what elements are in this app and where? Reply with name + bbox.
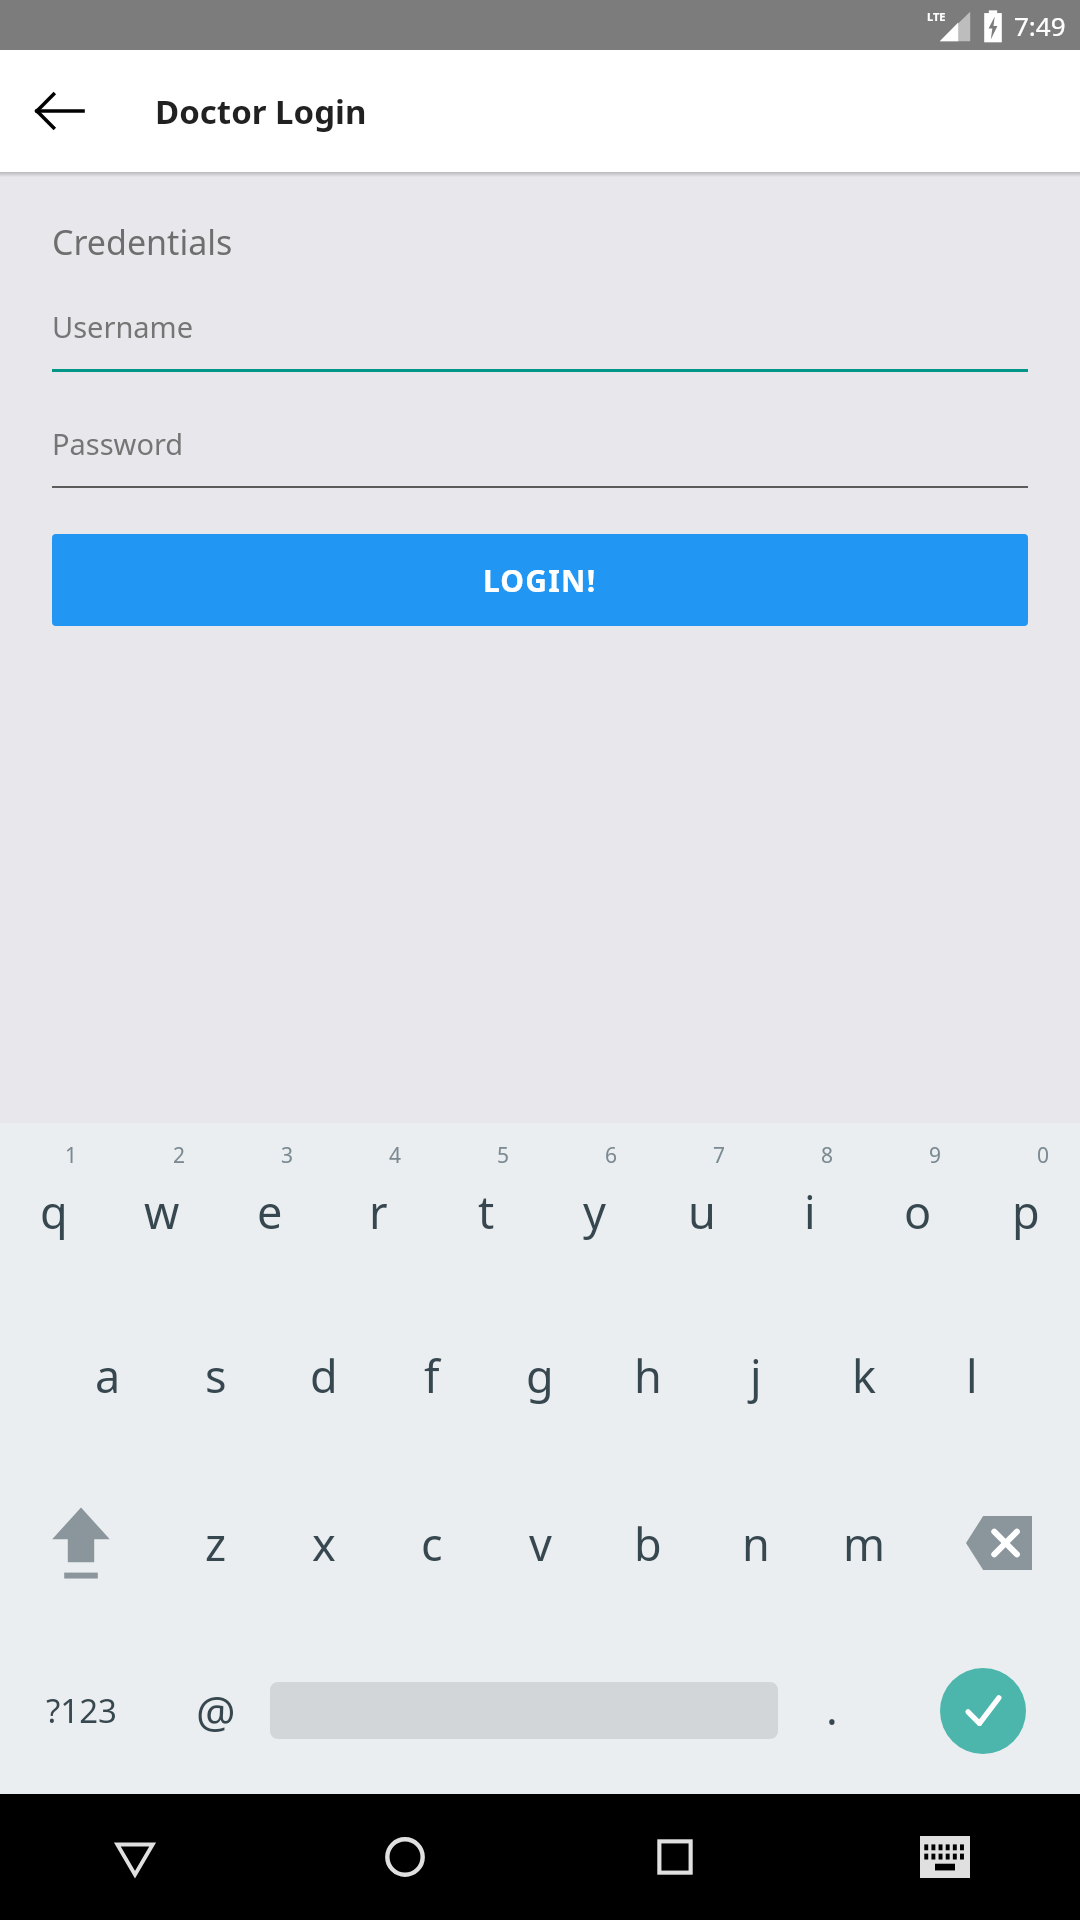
staticText: e	[257, 1181, 283, 1242]
button[interactable]: s	[162, 1291, 270, 1459]
button[interactable]: z	[162, 1459, 270, 1627]
staticText: p	[1012, 1181, 1040, 1242]
staticText: 4	[389, 1141, 402, 1170]
staticText: 2	[173, 1141, 186, 1170]
button[interactable]: a	[54, 1291, 162, 1459]
button[interactable]: f	[378, 1291, 486, 1459]
button[interactable]: 8	[756, 1123, 864, 1291]
button[interactable]: n	[702, 1459, 810, 1627]
button[interactable]: 9	[864, 1123, 972, 1291]
staticText: LOGIN!	[483, 560, 597, 601]
button[interactable]: 4	[324, 1123, 432, 1291]
button[interactable]: Back	[28, 79, 92, 143]
button[interactable]: 5	[432, 1123, 540, 1291]
button[interactable]: j	[702, 1291, 810, 1459]
button[interactable]: Shift	[0, 1459, 162, 1627]
button[interactable]: LOGIN!	[52, 534, 1028, 626]
staticText: z	[205, 1513, 227, 1574]
button[interactable]: @	[162, 1627, 270, 1794]
staticText: i	[804, 1181, 816, 1242]
staticText: k	[852, 1345, 877, 1406]
staticText: 5	[497, 1141, 510, 1170]
staticText: b	[634, 1513, 662, 1574]
button[interactable]: 2	[108, 1123, 216, 1291]
staticText: w	[144, 1181, 180, 1242]
staticText: 3	[281, 1141, 294, 1170]
button[interactable]: l	[918, 1291, 1026, 1459]
button[interactable]: Space	[270, 1627, 778, 1794]
button[interactable]: 0	[972, 1123, 1080, 1291]
staticText: v	[529, 1513, 552, 1574]
staticText: 9	[929, 1141, 942, 1170]
button[interactable]: Password	[52, 424, 1028, 488]
button[interactable]: 7	[648, 1123, 756, 1291]
staticText: ?123	[46, 1688, 117, 1733]
staticText: o	[904, 1181, 932, 1242]
staticText: s	[205, 1345, 227, 1406]
button[interactable]: d	[270, 1291, 378, 1459]
staticText: LTE	[927, 9, 946, 24]
button[interactable]: Recent apps	[540, 1794, 810, 1920]
staticText: 1	[65, 1141, 78, 1170]
staticText: x	[312, 1513, 336, 1574]
button[interactable]: 3	[216, 1123, 324, 1291]
staticText: q	[40, 1181, 68, 1242]
staticText: l	[966, 1345, 978, 1406]
staticText: 0	[1037, 1141, 1050, 1170]
staticText: g	[526, 1345, 554, 1406]
staticText: Doctor Login	[155, 89, 367, 134]
button[interactable]: Back	[0, 1794, 270, 1920]
staticText: @	[196, 1681, 236, 1741]
staticText: c	[421, 1513, 443, 1574]
staticText: f	[424, 1345, 440, 1406]
staticText: y	[583, 1181, 606, 1242]
staticText: h	[634, 1345, 662, 1406]
button[interactable]: g	[486, 1291, 594, 1459]
staticText: Password	[52, 424, 184, 463]
staticText: 6	[605, 1141, 618, 1170]
button[interactable]: c	[378, 1459, 486, 1627]
button[interactable]: h	[594, 1291, 702, 1459]
staticText: u	[688, 1181, 716, 1242]
button[interactable]: Backspace	[918, 1459, 1080, 1627]
button[interactable]: x	[270, 1459, 378, 1627]
staticText: d	[310, 1345, 338, 1406]
button[interactable]: 6	[540, 1123, 648, 1291]
button[interactable]: Hide keyboard	[810, 1794, 1080, 1920]
staticText: Username	[52, 307, 194, 346]
staticText: Credentials	[52, 219, 233, 265]
button[interactable]: k	[810, 1291, 918, 1459]
staticText: 8	[821, 1141, 834, 1170]
button[interactable]: b	[594, 1459, 702, 1627]
staticText: j	[750, 1345, 762, 1406]
button[interactable]: ?123	[0, 1627, 162, 1794]
button[interactable]: Username	[52, 307, 1028, 372]
staticText: .	[826, 1678, 838, 1738]
button[interactable]: v	[486, 1459, 594, 1627]
staticText: t	[478, 1181, 495, 1242]
staticText: 7:49	[1014, 8, 1066, 43]
button[interactable]: m	[810, 1459, 918, 1627]
button[interactable]: .	[778, 1627, 886, 1794]
button[interactable]: Home	[270, 1794, 540, 1920]
staticText: m	[843, 1513, 886, 1574]
button[interactable]: Enter	[886, 1627, 1080, 1794]
staticText: r	[369, 1181, 388, 1242]
staticText: a	[95, 1345, 121, 1406]
staticText: 7	[713, 1141, 726, 1170]
button[interactable]: 1	[0, 1123, 108, 1291]
staticText: n	[742, 1513, 770, 1574]
